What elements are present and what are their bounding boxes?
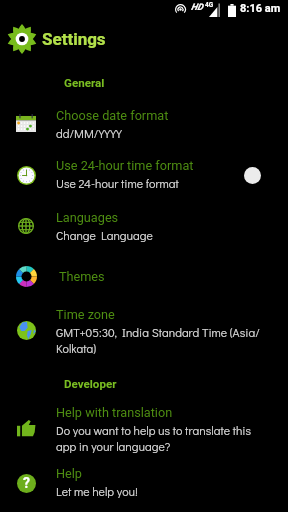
button[interactable]: Use 24-hour time format xyxy=(0,149,288,200)
staticText: Do you want to help us to translate this xyxy=(56,422,252,438)
staticText: Kolkata) xyxy=(56,340,97,356)
button[interactable]: Developer xyxy=(0,369,288,399)
staticText: Use 24-hour time format xyxy=(56,158,194,173)
button[interactable]: Languages xyxy=(0,200,288,251)
staticText: dd/MM/YYYY xyxy=(56,125,122,141)
staticText: Themes xyxy=(56,269,105,284)
staticText: 4G xyxy=(205,1,214,9)
staticText: Use 24-hour time format xyxy=(56,175,179,191)
staticText: Help with translation xyxy=(56,405,173,420)
staticText: Settings xyxy=(42,29,106,49)
staticText: GMT+05:30, India Standard Time (Asia/ xyxy=(56,324,260,340)
staticText: 8:16 am xyxy=(240,2,281,15)
button[interactable]: ? xyxy=(0,457,288,508)
staticText: Help xyxy=(56,466,82,481)
button[interactable]: Settings xyxy=(7,24,37,54)
button[interactable]: Time zone xyxy=(0,300,288,359)
staticText: Developer xyxy=(64,377,117,391)
button[interactable]: General xyxy=(0,68,288,98)
staticText: Choose date format xyxy=(56,108,169,123)
staticText: ? xyxy=(23,475,30,491)
staticText: Let me help you! xyxy=(56,483,138,499)
staticText: Languages xyxy=(56,210,119,225)
button[interactable]: Toggle 24-hour time format xyxy=(235,158,269,192)
button[interactable]: Help with translation xyxy=(0,398,288,457)
staticText: Change Language xyxy=(56,227,153,243)
staticText: app in your language? xyxy=(56,438,171,454)
button[interactable]: Choose date format xyxy=(0,98,288,149)
button[interactable]: Themes xyxy=(0,251,288,300)
staticText: General xyxy=(64,76,105,90)
staticText: Time zone xyxy=(56,307,115,322)
staticText: HD xyxy=(191,2,203,13)
